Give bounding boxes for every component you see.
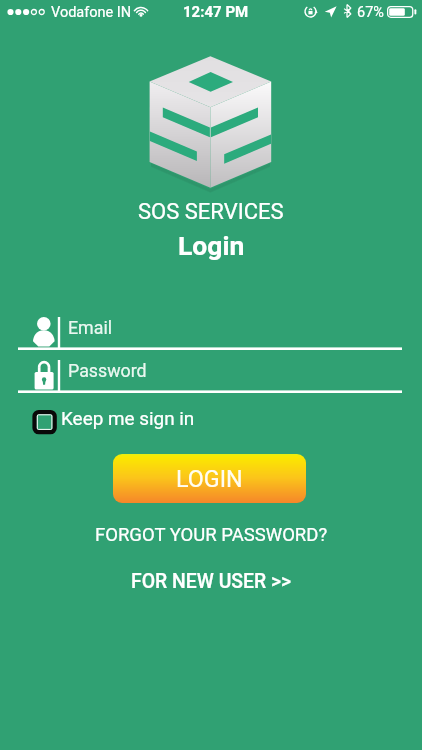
staticText: Login <box>178 230 245 261</box>
button[interactable]: LOGIN <box>113 454 306 503</box>
button[interactable]: Password <box>18 358 402 393</box>
staticText: 12:47 PM <box>183 3 249 21</box>
button[interactable]: FORGOT YOUR PASSWORD? <box>85 519 338 551</box>
button[interactable]: Keep me sign in <box>28 405 196 435</box>
button[interactable]: Email <box>18 315 402 350</box>
staticText: Password <box>68 360 147 381</box>
button[interactable]: FOR NEW USER >> <box>121 565 302 598</box>
staticText: SOS SERVICES <box>138 199 284 225</box>
staticText: Email <box>68 317 113 338</box>
staticText: 67% <box>357 4 384 21</box>
staticText: Keep me sign in <box>61 407 195 429</box>
staticText: LOGIN <box>176 465 243 492</box>
staticText: FORGOT YOUR PASSWORD? <box>95 524 328 546</box>
staticText: FOR NEW USER >> <box>131 570 292 593</box>
staticText: Vodafone IN <box>51 4 132 21</box>
